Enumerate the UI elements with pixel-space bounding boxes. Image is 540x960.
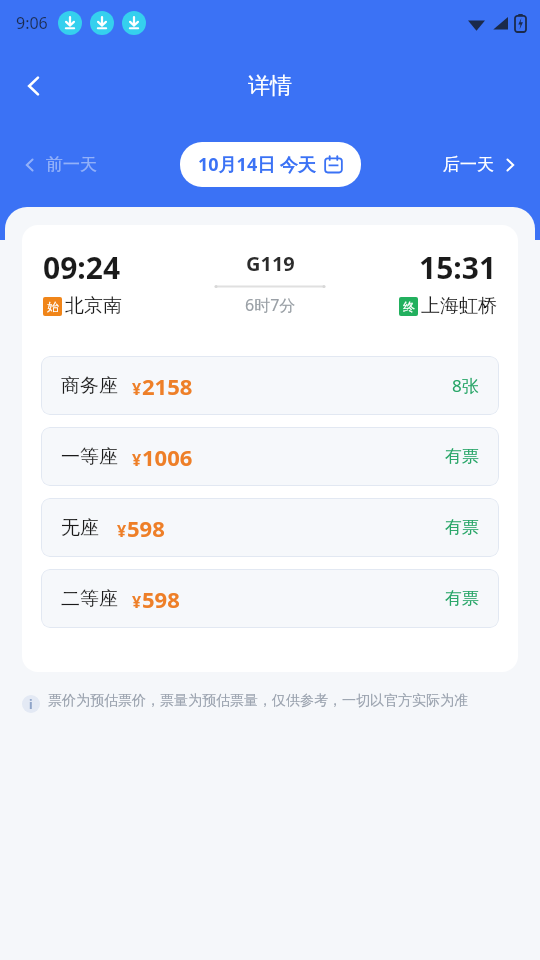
staticText: i [29,696,33,712]
staticText: 终 [403,299,415,314]
button[interactable]: 后一天 [437,146,524,183]
staticText: 始 [47,299,59,314]
staticText: 后一天 [443,154,494,175]
staticText: ¥ [117,520,127,542]
staticText: 09:24 [43,247,121,288]
staticText: 10月14日 今天 [198,152,316,177]
staticText: 二等座 [61,587,118,611]
staticText: 1006 [142,442,193,472]
staticText: 2158 [142,371,193,401]
staticText: 8张 [452,374,479,397]
staticText: 6时7分 [245,294,296,316]
staticText: 商务座 [61,374,118,398]
staticText: 9:06 [16,12,48,34]
button[interactable]: 一等座 [41,427,499,486]
staticText: ¥ [132,449,142,471]
button[interactable]: 二等座 [41,569,499,628]
staticText: 前一天 [46,154,97,175]
button[interactable]: 前一天 [16,146,103,183]
button[interactable]: 10月14日 今天 [180,142,361,187]
staticText: 无座 [61,516,99,540]
staticText: ¥ [132,378,142,400]
staticText: 598 [127,513,165,543]
staticText: 15:31 [419,247,497,288]
staticText: 有票 [445,446,479,467]
staticText: 详情 [248,72,292,100]
staticText: G119 [246,250,295,277]
button[interactable]: 无座 [41,498,499,557]
staticText: 上海虹桥 [421,294,497,318]
staticText: ¥ [132,591,142,613]
staticText: 北京南 [65,294,122,318]
button[interactable]: Back [10,62,58,110]
staticText: 一等座 [61,445,118,469]
staticText: 有票 [445,588,479,609]
button[interactable]: 商务座 [41,356,499,415]
staticText: 598 [142,584,180,614]
staticText: 票价为预估票价，票量为预估票量，仅供参考，一切以官方实际为准 [48,692,468,710]
staticText: 有票 [445,517,479,538]
